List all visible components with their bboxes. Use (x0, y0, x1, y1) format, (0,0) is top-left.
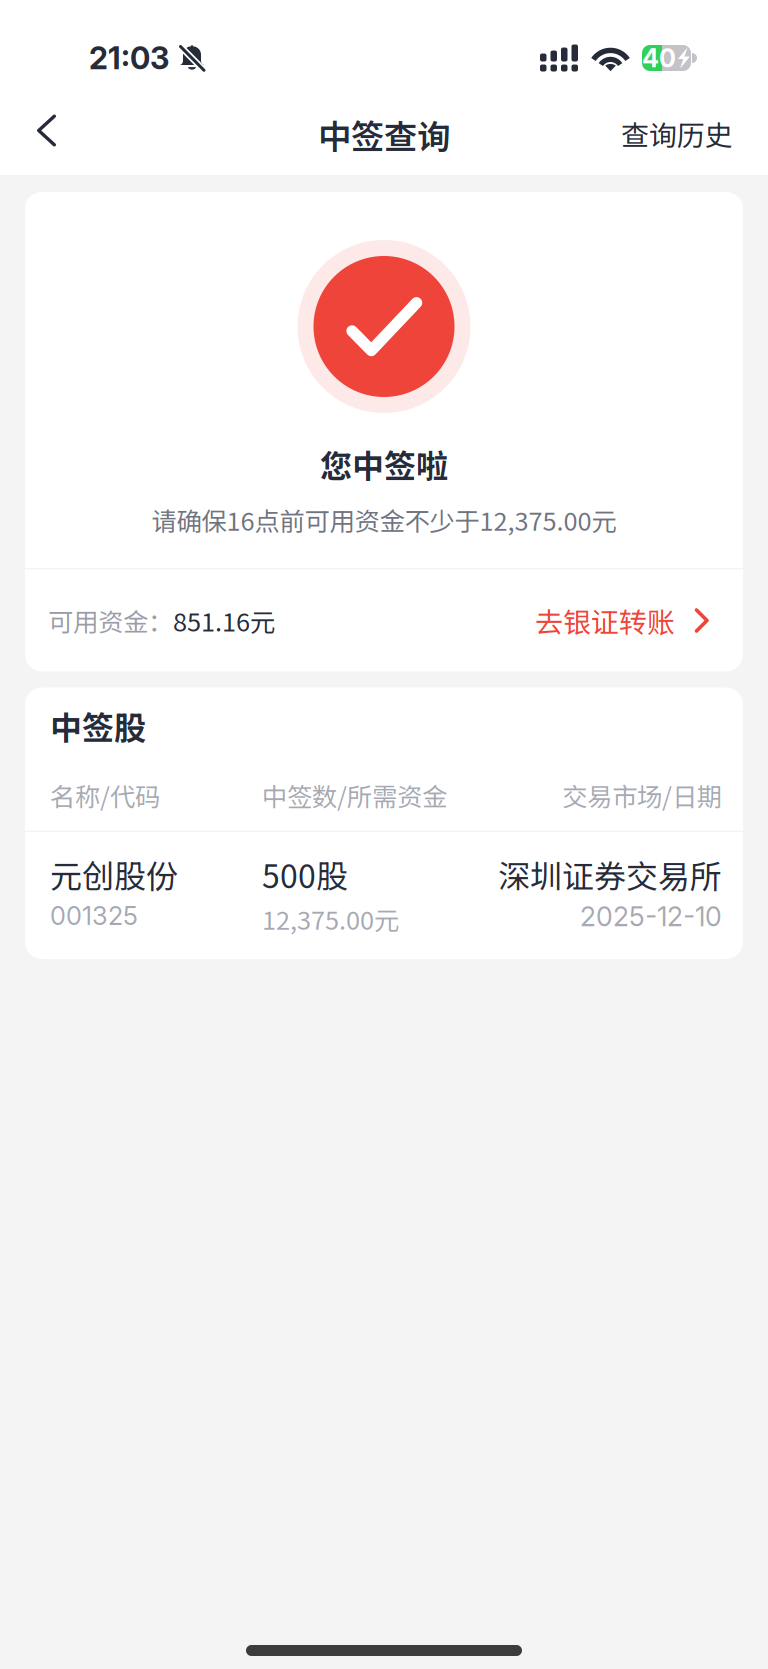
staticText: 500股 (262, 851, 348, 897)
staticText: 请确保16点前可用资金不少于12,375.00元 (151, 501, 616, 538)
staticText: 查询历史 (621, 113, 733, 154)
staticText: 交易市场/日期 (562, 777, 722, 814)
staticText: 可用资金： (48, 602, 173, 639)
staticText: 元创股份 (50, 851, 178, 897)
staticText: 40 (642, 43, 676, 73)
staticText: 中签查询 (318, 110, 450, 159)
staticText: 中签数/所需资金 (262, 777, 447, 814)
button[interactable]: Back (17, 94, 80, 166)
staticText: 851.16元 (173, 602, 275, 639)
staticText: 001325 (50, 900, 138, 931)
button[interactable]: 可用资金： (25, 569, 743, 671)
button[interactable]: 查询历史 (603, 90, 751, 171)
staticText: 2025-12-10 (580, 900, 722, 933)
staticText: 12,375.00元 (262, 900, 399, 937)
staticText: 去银证转账 (535, 600, 675, 641)
staticText: 中签股 (50, 702, 146, 749)
staticText: 您中签啦 (320, 441, 448, 487)
staticText: 名称/代码 (50, 777, 160, 814)
staticText: 深圳证券交易所 (498, 851, 722, 897)
staticText: 21:03 (89, 39, 169, 76)
